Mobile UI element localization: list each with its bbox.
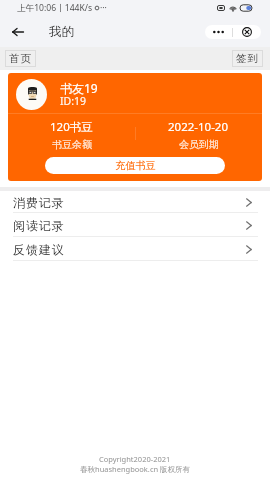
staticText: 120书豆 [50, 119, 93, 135]
staticText: 反馈建议 [13, 242, 65, 257]
staticText: 首页 [9, 52, 33, 65]
staticText: 春秋huashengbook.cn 版权所有 [80, 464, 191, 474]
button[interactable]: Back [8, 22, 28, 42]
staticText: 阅读记录 [13, 218, 65, 233]
staticText: 2022-10-20 [168, 119, 229, 135]
staticText: 书豆余额 [52, 138, 92, 151]
button[interactable]: 首页 [5, 50, 36, 67]
staticText: ID:19 [60, 94, 87, 108]
button[interactable]: Close [233, 25, 261, 39]
button[interactable]: 充值书豆 [45, 157, 225, 174]
staticText: 签到 [236, 52, 260, 65]
staticText: 充值书豆 [115, 159, 156, 172]
button[interactable]: 反馈建议 [0, 237, 270, 261]
staticText: 书友19 [60, 80, 98, 96]
staticText: 消费记录 [13, 195, 65, 210]
staticText: ··· [100, 2, 107, 14]
staticText: 上午10:06丨144K/s [17, 2, 93, 14]
staticText: 会员到期 [179, 138, 219, 151]
button[interactable]: More options [205, 25, 232, 39]
button[interactable]: 消费记录 [0, 191, 270, 213]
staticText: Copyright2020-2021 [99, 454, 171, 464]
button[interactable]: 阅读记录 [0, 213, 270, 237]
button[interactable]: 签到 [232, 50, 263, 67]
staticText: 我的 [49, 24, 74, 40]
